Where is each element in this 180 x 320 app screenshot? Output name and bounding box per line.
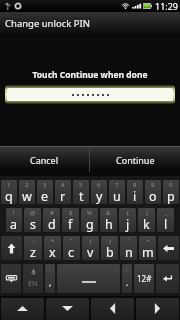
staticText: j [126,216,130,232]
button[interactable]: Left [91,298,134,320]
staticText: Touch Continue when done [0,69,180,81]
staticText: f [68,216,73,232]
button[interactable]: ) [138,208,155,232]
staticText: 6 [97,181,101,189]
button[interactable]: Up [1,298,44,320]
button[interactable]: 1 [1,180,17,204]
button[interactable]: 6 [91,180,107,204]
staticText: a [10,216,18,232]
button[interactable]: # [43,208,60,232]
staticText: k [143,216,150,232]
button[interactable]: ) [101,236,118,260]
staticText: ! [13,209,15,217]
staticText: c [68,244,75,260]
staticText: Cancel [30,154,59,166]
button[interactable]: " [63,236,80,260]
button[interactable]: 9 [145,180,161,204]
staticText: @ [30,209,36,217]
staticText: b [106,244,114,260]
staticText: Continue [116,154,155,166]
staticText: h [105,216,113,232]
staticText: : [49,265,51,273]
button[interactable]: ; [122,264,132,293]
staticText: ( [127,209,129,217]
button[interactable]: 5 [73,180,89,204]
button[interactable]: 4 [55,180,71,204]
button[interactable]: Backspace [158,236,179,260]
staticText: ( [90,237,92,245]
staticText: - [32,237,34,245]
button[interactable]: @ [24,208,41,232]
staticText: s [30,216,36,232]
button[interactable]: ' [120,236,137,260]
staticText: u [113,188,121,204]
staticText: 4 [61,181,65,189]
button[interactable] [7,88,173,101]
button[interactable]: Cancel [0,147,89,172]
button[interactable]: ( [82,236,99,260]
staticText: . [126,277,129,288]
staticText: o [149,188,157,204]
staticText: EN [28,279,38,289]
staticText: g [86,216,94,232]
staticText: z [30,244,36,260]
staticText: 11:29 [155,0,179,12]
button[interactable]: ( [119,208,136,232]
button[interactable]: ! [6,208,22,232]
staticText: m [142,244,154,260]
staticText: # [50,209,54,217]
button[interactable]: + [139,236,156,260]
staticText: t [79,188,84,204]
staticText: v [87,244,94,260]
staticText: 1 [7,181,11,189]
staticText: 0 [169,181,173,189]
staticText: r [60,188,66,204]
staticText: y [96,188,103,204]
button[interactable]: 8 [127,180,143,204]
staticText: q [5,188,13,204]
staticText: * [51,237,55,245]
staticText: ; [126,265,128,273]
button[interactable]: 12# [134,264,154,293]
staticText: 2 [25,181,29,189]
staticText: e [41,188,49,204]
button[interactable]: & [100,208,117,232]
staticText: ) [146,209,148,217]
button[interactable]: $ [62,208,79,232]
staticText: i [133,188,137,204]
staticText: , [49,277,52,288]
staticText: 8 [133,181,137,189]
staticText: ) [109,237,111,245]
button[interactable]: Space [57,264,120,293]
button[interactable]: Hide keyboard [1,264,21,293]
staticText: ' [128,237,130,245]
button[interactable]: 0 [163,180,179,204]
staticText: x [49,244,56,260]
staticText: & [106,209,111,217]
button[interactable]: Continue [90,147,180,172]
button[interactable]: - [24,236,42,260]
button[interactable]: % [81,208,98,232]
button[interactable]: Enter [156,264,179,293]
button[interactable]: 7 [109,180,125,204]
staticText: 12# [137,273,152,284]
button[interactable]: * [44,236,61,260]
button[interactable]: 2 [19,180,35,204]
staticText: " [70,237,73,245]
staticText: $ [69,209,73,217]
button[interactable]: _ [157,208,174,232]
button[interactable]: Down [46,298,89,320]
staticText: + [146,237,150,245]
button[interactable]: 3 [37,180,53,204]
button[interactable]: : [45,264,55,293]
staticText: w [22,188,32,204]
button[interactable]: Right [136,298,179,320]
staticText: 5 [79,181,83,189]
button[interactable]: Shift [1,236,22,260]
staticText: _ [164,209,167,217]
staticText: n [125,244,133,260]
staticText: 7 [115,181,119,189]
button[interactable]: Voice input [23,264,43,293]
staticText: Change unlock PIN [5,17,90,30]
staticText: p [167,188,175,204]
